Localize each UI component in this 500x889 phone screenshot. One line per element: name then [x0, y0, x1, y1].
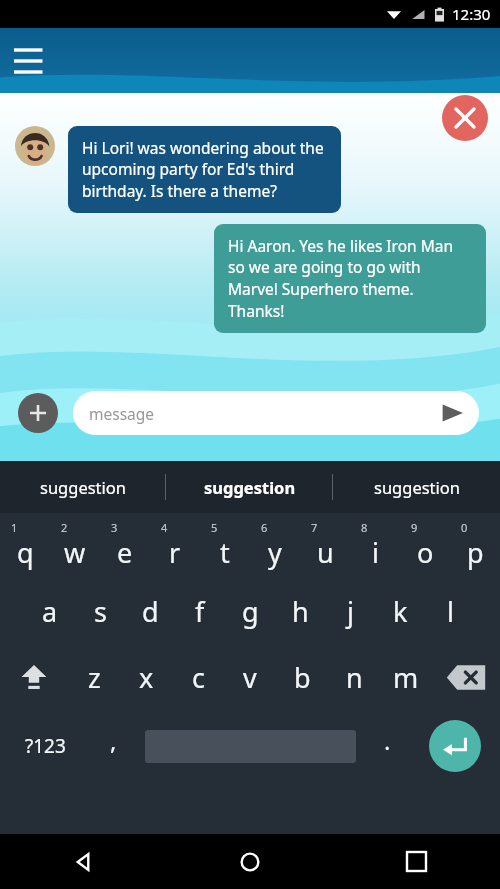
staticText: e	[117, 534, 133, 571]
button[interactable]: c	[172, 644, 224, 710]
button[interactable]: Add attachment	[18, 393, 58, 433]
staticText: n	[346, 659, 363, 696]
button[interactable]: message	[73, 391, 479, 435]
button[interactable]: b	[276, 644, 328, 710]
button[interactable]: 4	[150, 513, 200, 579]
staticText: y	[268, 534, 282, 571]
button[interactable]: 7	[300, 513, 350, 579]
button[interactable]: f	[175, 579, 225, 644]
button[interactable]: Hi Aaron. Yes he likes Iron Man so we ar…	[214, 224, 486, 333]
button[interactable]: Shift	[0, 644, 68, 710]
staticText: 5	[211, 520, 218, 535]
button[interactable]: ,	[91, 710, 136, 782]
staticText: t	[220, 534, 230, 571]
button[interactable]: 6	[250, 513, 300, 579]
button[interactable]: h	[275, 579, 325, 644]
button[interactable]: 2	[50, 513, 100, 579]
staticText: Hi Aaron. Yes he likes Iron Man so we ar…	[228, 235, 472, 322]
button[interactable]: suggestion	[0, 461, 166, 513]
staticText: i	[372, 534, 379, 571]
button[interactable]: Backspace	[432, 644, 500, 710]
button[interactable]: ?123	[0, 710, 91, 782]
staticText: 4	[161, 520, 168, 535]
staticText: c	[192, 659, 205, 696]
button[interactable]: l	[425, 579, 475, 644]
staticText: ,	[110, 724, 117, 757]
button[interactable]: suggestion	[333, 461, 500, 513]
staticText: f	[195, 593, 205, 630]
staticText: z	[88, 659, 101, 696]
staticText: 6	[261, 520, 268, 535]
staticText: j	[347, 593, 354, 630]
staticText: 8	[361, 520, 368, 535]
button[interactable]: Enter	[410, 710, 500, 782]
staticText: message	[89, 403, 155, 424]
staticText: suggestion	[374, 476, 460, 498]
staticText: l	[447, 593, 454, 630]
button[interactable]: Space	[136, 710, 365, 782]
button[interactable]: Open navigation menu	[12, 44, 46, 78]
button[interactable]: 1	[0, 513, 50, 579]
staticText: .	[384, 724, 391, 757]
button[interactable]: 8	[350, 513, 400, 579]
staticText: 12:30	[452, 4, 491, 24]
button[interactable]: 3	[100, 513, 150, 579]
button[interactable]: d	[125, 579, 175, 644]
button[interactable]: Home	[166, 834, 333, 889]
button[interactable]: 9	[400, 513, 450, 579]
staticText: h	[292, 593, 309, 630]
button[interactable]: a	[25, 579, 75, 644]
button[interactable]: z	[68, 644, 120, 710]
staticText: d	[142, 593, 159, 630]
staticText: w	[64, 534, 86, 571]
button[interactable]: .	[365, 710, 410, 782]
staticText: ?123	[25, 733, 66, 759]
staticText: 0	[461, 520, 468, 535]
button[interactable]: Close conversation	[442, 95, 488, 141]
staticText: r	[169, 534, 181, 571]
button[interactable]: Hi Lori! was wondering about the upcomin…	[68, 126, 341, 213]
staticText: s	[94, 593, 107, 630]
button[interactable]: suggestion	[166, 461, 333, 513]
button[interactable]: Recent apps	[333, 834, 500, 889]
button[interactable]: g	[225, 579, 275, 644]
button[interactable]: Back	[0, 834, 166, 889]
button[interactable]: Send message	[439, 400, 465, 426]
staticText: g	[242, 593, 259, 630]
button[interactable]: 5	[200, 513, 250, 579]
staticText: 1	[11, 520, 18, 535]
staticText: x	[139, 659, 154, 696]
staticText: q	[17, 534, 34, 571]
staticText: u	[317, 534, 334, 571]
button[interactable]: j	[325, 579, 375, 644]
staticText: m	[393, 659, 419, 696]
staticText: Hi Lori! was wondering about the upcomin…	[82, 137, 327, 202]
staticText: 2	[61, 520, 68, 535]
staticText: p	[467, 534, 484, 571]
button[interactable]: x	[120, 644, 172, 710]
staticText: 9	[411, 520, 418, 535]
button[interactable]: m	[380, 644, 432, 710]
staticText: k	[393, 593, 408, 630]
button[interactable]: 0	[450, 513, 500, 579]
button[interactable]: s	[75, 579, 125, 644]
staticText: 3	[111, 520, 118, 535]
button[interactable]: n	[328, 644, 380, 710]
button[interactable]: v	[224, 644, 276, 710]
staticText: a	[42, 593, 58, 630]
button[interactable]: k	[375, 579, 425, 644]
staticText: o	[417, 534, 434, 571]
staticText: b	[294, 659, 311, 696]
staticText: 7	[311, 520, 318, 535]
staticText: v	[243, 659, 257, 696]
staticText: suggestion	[40, 476, 126, 498]
staticText: suggestion	[204, 476, 296, 498]
